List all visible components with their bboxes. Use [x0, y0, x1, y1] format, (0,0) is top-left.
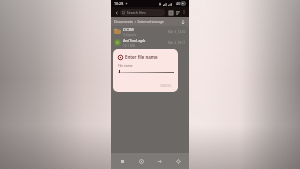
- staticText: Q Search files: [122, 10, 146, 15]
- button[interactable]: DCIM: [111, 26, 189, 37]
- button[interactable]: Settings: [170, 154, 186, 168]
- staticText: DCIM: [123, 27, 134, 32]
- staticText: 3 objects: [123, 33, 136, 37]
- button[interactable]: Sort order: [180, 19, 186, 25]
- button[interactable]: Recents: [114, 154, 130, 168]
- staticText: Mar 2, 09:11: [168, 41, 186, 45]
- button[interactable]: AniTool.apk: [111, 37, 189, 48]
- staticText: 10:28: [114, 1, 124, 6]
- staticText: Enter file name: [125, 54, 158, 60]
- button[interactable]: Grid view: [167, 9, 174, 16]
- staticText: 12.1 MB: [123, 44, 135, 48]
- button[interactable]: Browse: [133, 154, 149, 168]
- button[interactable]: More options: [181, 9, 187, 15]
- button[interactable]: CANCEL: [158, 83, 174, 89]
- staticText: Mar 3, 14:02: [168, 30, 186, 34]
- staticText: CANCEL: [160, 84, 172, 88]
- staticText: File name: [118, 64, 133, 68]
- button[interactable]: Sort: [174, 9, 181, 16]
- staticText: AniTool.apk: [123, 38, 146, 43]
- button[interactable]: Back: [113, 9, 120, 16]
- button[interactable]: Q Search files: [120, 9, 165, 16]
- staticText: 40: [176, 1, 180, 6]
- button[interactable]: Transfer: [151, 154, 167, 168]
- staticText: Documents › Internal storage: [114, 19, 165, 24]
